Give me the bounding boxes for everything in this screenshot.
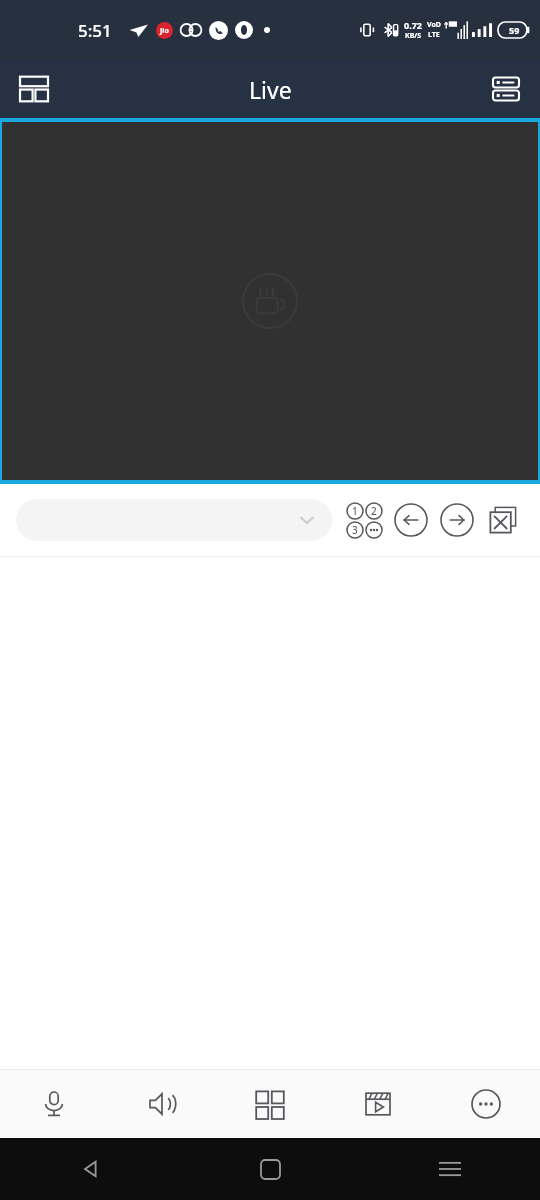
staticText: 1: [352, 504, 358, 518]
button[interactable]: More: [432, 1070, 540, 1138]
staticText: Live: [249, 74, 292, 105]
button[interactable]: Grid view: [216, 1070, 324, 1138]
button[interactable]: Layout: [12, 67, 56, 111]
staticText: 59: [509, 24, 520, 36]
button[interactable]: Next: [436, 499, 478, 541]
staticText: KB/S: [405, 31, 422, 41]
staticText: 0.72: [404, 19, 422, 31]
button[interactable]: Recordings: [324, 1070, 432, 1138]
button[interactable]: Previous: [390, 499, 432, 541]
button[interactable]: Microphone: [0, 1070, 108, 1138]
staticText: LTE: [428, 30, 440, 40]
staticText: 3: [352, 523, 358, 537]
button[interactable]: Back: [0, 1138, 180, 1200]
button[interactable]: Recent apps: [360, 1138, 540, 1200]
staticText: 5:51: [78, 19, 112, 42]
button[interactable]: Device list: [484, 67, 528, 111]
staticText: VoD: [427, 20, 441, 30]
staticText: Jio: [160, 26, 169, 36]
button[interactable]: Close: [482, 499, 524, 541]
button[interactable]: Channels: [344, 500, 384, 540]
staticText: 2: [371, 504, 377, 518]
button[interactable]: Volume: [108, 1070, 216, 1138]
button[interactable]: Home: [180, 1138, 360, 1200]
